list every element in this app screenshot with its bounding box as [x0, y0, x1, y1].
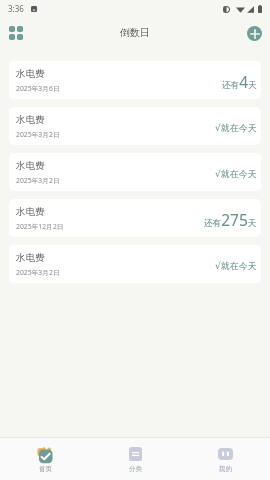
- staticText: 2025年3月6日: [16, 84, 60, 93]
- staticText: 2025年3月2日: [16, 130, 60, 139]
- button[interactable]: 首页: [0, 443, 90, 475]
- staticText: 我的: [219, 465, 232, 473]
- button[interactable]: 水电费: [9, 107, 261, 145]
- staticText: 3:36: [8, 3, 24, 14]
- staticText: 还有275天: [204, 209, 257, 230]
- staticText: √就在今天: [215, 168, 257, 179]
- button[interactable]: Categories grid: [3, 20, 29, 46]
- staticText: 水电费: [16, 160, 45, 172]
- staticText: 倒数日: [120, 26, 150, 39]
- staticText: 水电费: [16, 252, 45, 264]
- button[interactable]: 我的: [180, 443, 270, 475]
- staticText: 2025年3月2日: [16, 176, 60, 185]
- staticText: 水电费: [16, 68, 45, 80]
- button[interactable]: 水电费: [9, 61, 261, 99]
- staticText: 首页: [39, 465, 52, 473]
- button[interactable]: 水电费: [9, 153, 261, 191]
- button[interactable]: 水电费: [9, 199, 261, 237]
- button[interactable]: Add countdown: [247, 26, 262, 41]
- button[interactable]: 分类: [90, 443, 180, 475]
- staticText: √就在今天: [215, 260, 257, 271]
- staticText: 水电费: [16, 114, 45, 126]
- staticText: 2025年3月2日: [16, 268, 60, 277]
- staticText: 2025年12月2日: [16, 222, 64, 231]
- staticText: 分类: [129, 465, 142, 473]
- staticText: √就在今天: [215, 122, 257, 133]
- staticText: 还有4天: [222, 71, 257, 92]
- staticText: 水电费: [16, 206, 45, 218]
- button[interactable]: 水电费: [9, 245, 261, 283]
